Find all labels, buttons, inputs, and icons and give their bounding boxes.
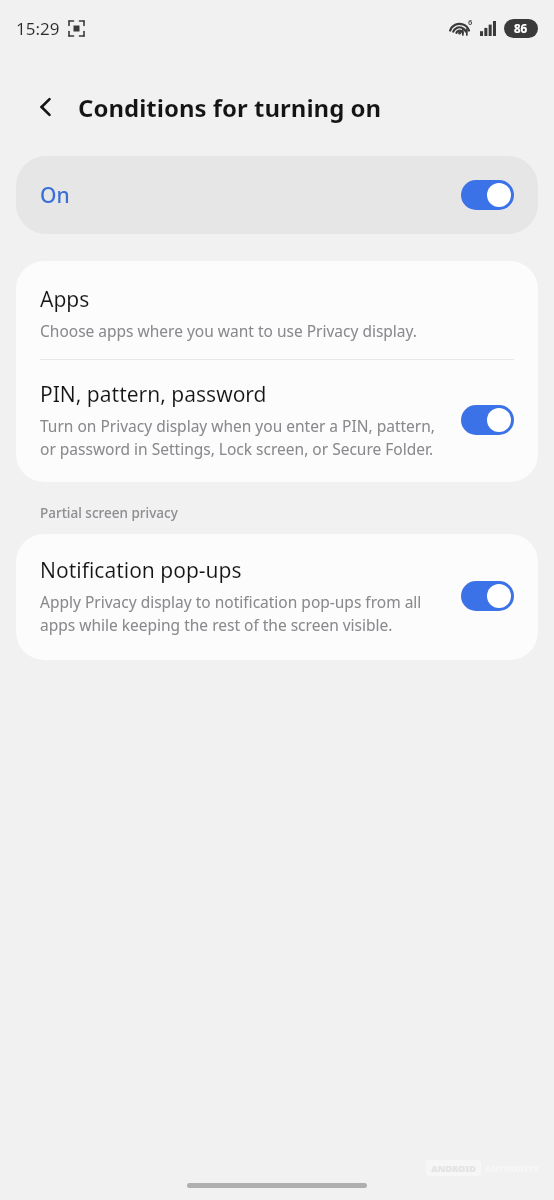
- button[interactable]: Notification pop-ups: [16, 534, 538, 660]
- staticText: 15:29: [16, 17, 60, 40]
- button[interactable]: Back: [24, 85, 68, 129]
- staticText: Conditions for turning on: [78, 91, 382, 124]
- staticText: On: [40, 181, 70, 210]
- staticText: PIN, pattern, password: [40, 380, 267, 409]
- staticText: 86: [514, 21, 528, 37]
- button[interactable]: PIN, pattern, password: [16, 360, 538, 482]
- staticText: Turn on Privacy display when you enter a…: [40, 415, 445, 460]
- button[interactable]: On: [16, 156, 538, 234]
- staticText: Choose apps where you want to use Privac…: [40, 320, 418, 341]
- staticText: ANDROID: [431, 1162, 476, 1174]
- staticText: Apply Privacy display to notification po…: [40, 591, 445, 636]
- staticText: Notification pop-ups: [40, 556, 242, 585]
- button[interactable]: Apps: [16, 261, 538, 359]
- staticText: Apps: [40, 285, 90, 314]
- staticText: Partial screen privacy: [40, 504, 178, 522]
- staticText: 6: [468, 17, 473, 27]
